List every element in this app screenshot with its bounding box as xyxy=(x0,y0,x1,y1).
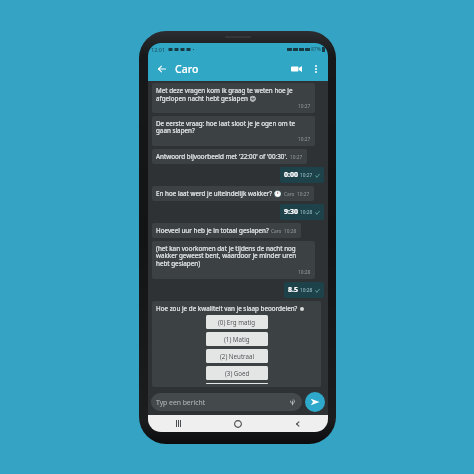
staticText: 87% xyxy=(311,46,321,53)
button[interactable]: Recents xyxy=(148,415,208,432)
button[interactable]: De eerste vraag: hoe laat sloot je je og… xyxy=(152,116,315,146)
staticText: 8.5 xyxy=(288,285,298,295)
button[interactable]: 9:30 xyxy=(280,204,324,220)
button[interactable]: (2) Neutraal xyxy=(206,349,268,363)
button[interactable]: Home xyxy=(208,415,268,432)
button[interactable]: (0) Erg matig xyxy=(206,315,268,329)
staticText: Caro xyxy=(175,62,199,76)
button[interactable]: (1) Matig xyxy=(206,332,268,346)
button[interactable]: (4) Erg goed xyxy=(206,383,268,384)
staticText: De eerste vraag: hoe laat sloot je je og… xyxy=(156,119,311,135)
button[interactable]: 0:00 xyxy=(280,167,324,183)
button[interactable]: Back xyxy=(268,415,328,432)
staticText: 0:00 xyxy=(284,170,298,180)
button[interactable]: Antwoord bijvoorbeeld met '22:00' of '00… xyxy=(152,149,307,164)
button[interactable]: (het kan voorkomen dat je tijdens de nac… xyxy=(152,241,315,279)
staticText: (3) Goed xyxy=(225,369,250,377)
staticText: 10:28 xyxy=(300,209,313,216)
staticText: 12:01 xyxy=(151,46,166,53)
button[interactable]: Back xyxy=(153,60,170,77)
staticText: Antwoord bijvoorbeeld met '22:00' of '00… xyxy=(156,152,288,161)
staticText: (1) Matig xyxy=(224,335,250,343)
button[interactable]: Typ een bericht xyxy=(151,393,302,411)
staticText: Caro xyxy=(284,191,295,198)
staticText: 10:28 xyxy=(298,269,311,276)
staticText: (2) Neutraal xyxy=(220,352,255,360)
button[interactable]: En hoe laat werd je uiteindelijk wakker?… xyxy=(152,186,314,201)
button[interactable]: More options xyxy=(308,61,323,76)
button[interactable]: 8.5 xyxy=(284,282,324,298)
staticText: 10:28 xyxy=(300,287,313,294)
staticText: 10:28 xyxy=(284,228,297,235)
staticText: (0) Erg matig xyxy=(218,318,256,326)
staticText: 10:27 xyxy=(298,103,311,110)
button[interactable]: (3) Goed xyxy=(206,366,268,380)
staticText: 10:27 xyxy=(300,172,313,179)
button[interactable]: Video call xyxy=(287,60,305,78)
staticText: Caro xyxy=(271,228,282,235)
staticText: 10:27 xyxy=(290,154,303,161)
staticText: Typ een bericht xyxy=(156,398,206,407)
button[interactable]: Send xyxy=(305,392,325,412)
button[interactable]: Met deze vragen kom ik graag te weten ho… xyxy=(152,83,315,113)
staticText: 10:27 xyxy=(297,191,310,198)
button[interactable]: Hoeveel uur heb je in totaal geslapen? xyxy=(152,223,301,238)
button[interactable]: Attach xyxy=(288,398,297,407)
staticText: (het kan voorkomen dat je tijdens de nac… xyxy=(156,244,311,268)
button[interactable]: Hoe zou je de kwaliteit van je slaap beo… xyxy=(152,301,321,387)
staticText: 10:27 xyxy=(298,136,311,143)
staticText: Hoe zou je de kwaliteit van je slaap beo… xyxy=(156,304,298,313)
staticText: 9:30 xyxy=(284,207,298,217)
staticText: En hoe laat werd je uiteindelijk wakker?… xyxy=(156,189,282,198)
staticText: Hoeveel uur heb je in totaal geslapen? xyxy=(156,226,269,235)
staticText: Met deze vragen kom ik graag te weten ho… xyxy=(156,86,311,102)
